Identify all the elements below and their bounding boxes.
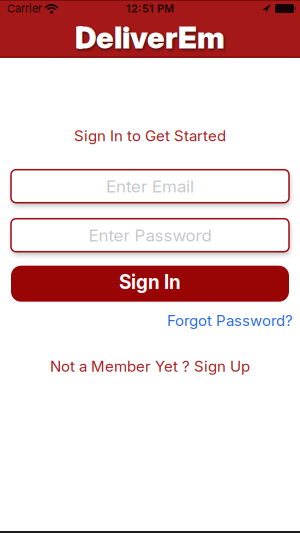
staticText: 12:51 PM bbox=[126, 2, 174, 15]
staticText: Carrier bbox=[7, 2, 42, 15]
staticText: Enter Email bbox=[106, 176, 194, 196]
button[interactable]: Sign In bbox=[11, 266, 289, 302]
staticText: Sign In bbox=[119, 271, 181, 293]
button[interactable]: Forgot Password? bbox=[167, 312, 293, 329]
button[interactable]: Enter Password bbox=[11, 219, 289, 252]
staticText: Forgot Password? bbox=[167, 312, 293, 329]
button[interactable]: Not a Member Yet ? Sign Up bbox=[50, 357, 250, 375]
staticText: Not a Member Yet ? Sign Up bbox=[50, 357, 250, 375]
staticText: DeliverEm bbox=[75, 20, 225, 55]
staticText: Sign In to Get Started bbox=[74, 127, 226, 145]
button[interactable]: Enter Email bbox=[11, 170, 289, 203]
staticText: Enter Password bbox=[88, 225, 211, 245]
